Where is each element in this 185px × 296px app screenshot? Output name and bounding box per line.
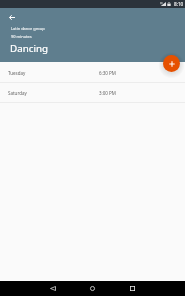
staticText: Saturday (8, 90, 27, 96)
staticText: Dancing (10, 42, 49, 55)
staticText: 3:00 PM (99, 90, 116, 96)
button[interactable]: Saturday (0, 82, 185, 102)
staticText: 8:10 (174, 1, 184, 7)
button[interactable]: Back (45, 281, 60, 296)
staticText: Latin dance group (11, 26, 45, 31)
button[interactable]: Recent apps (125, 281, 140, 296)
staticText: Tuesday (8, 70, 26, 76)
button[interactable]: Add event (163, 55, 180, 72)
button[interactable]: Tuesday (0, 62, 185, 82)
staticText: 6:30 PM (99, 70, 116, 76)
button[interactable]: Home (85, 281, 100, 296)
staticText: 90 minutes (11, 34, 32, 39)
button[interactable]: Back (4, 10, 19, 25)
